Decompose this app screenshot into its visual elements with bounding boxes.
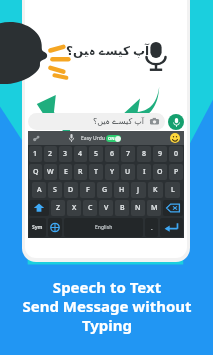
staticText: G [102,185,108,195]
button[interactable]: Enter [160,218,183,237]
staticText: V [104,203,109,213]
button[interactable]: Microphone [142,40,170,72]
staticText: K [153,185,158,195]
staticText: I [143,167,146,177]
staticText: 5 [94,149,99,159]
button[interactable]: J [131,182,146,198]
staticText: 1 [33,149,38,159]
staticText: C [88,203,93,213]
button[interactable]: Z [51,200,65,216]
button[interactable]: K [148,182,163,198]
staticText: آپ کیسے ہیں؟ [93,115,145,128]
staticText: 2 [48,149,53,159]
staticText: F [86,185,90,195]
staticText: 4 [78,149,83,159]
staticText: 0 [174,149,179,159]
button[interactable]: R [74,164,87,180]
button[interactable]: E [59,164,72,180]
staticText: ON [108,136,115,141]
staticText: H [119,185,125,195]
staticText: Q [33,167,39,177]
staticText: 6 [110,149,115,159]
button[interactable]: U [121,164,135,180]
button[interactable]: 3 [59,146,72,162]
staticText: L [171,185,175,195]
button[interactable]: W [44,164,57,180]
button[interactable]: B [115,200,129,216]
button[interactable]: . [145,218,158,237]
button[interactable]: G [97,182,112,198]
button[interactable]: H [114,182,129,198]
button[interactable]: ON [106,135,121,142]
button[interactable]: آپ کیسے ہیں؟ [28,113,165,130]
button[interactable]: Shift [29,200,49,216]
other: Voice input [69,134,74,142]
staticText: 3 [63,149,68,159]
button[interactable]: English [64,218,143,237]
staticText: English [95,224,113,231]
staticText: D [68,185,74,195]
button[interactable]: P [169,164,183,180]
staticText: M [151,203,158,213]
staticText: Speech to Text Send Message without Typi… [22,277,192,335]
staticText: 8 [142,149,147,159]
staticText: T [94,167,98,177]
staticText: S [53,185,57,195]
button[interactable]: F [80,182,95,198]
button[interactable]: 0 [169,146,183,162]
staticText: W [47,167,54,177]
button[interactable]: Settings [32,134,41,143]
other: Camera [150,117,159,126]
button[interactable]: X [67,200,81,216]
staticText: O [157,167,163,177]
button[interactable]: V [99,200,113,216]
staticText: B [120,203,125,213]
button[interactable]: O [153,164,167,180]
staticText: Sym [32,224,43,231]
button[interactable]: Change language [48,218,62,237]
staticText: آپ کیسے ہیں؟ [66,42,150,58]
staticText: 9 [158,149,163,159]
button[interactable]: Emoji [170,133,180,143]
button[interactable]: S [48,182,62,198]
button[interactable]: D [64,182,78,198]
staticText: 7 [126,149,131,159]
staticText: E [64,167,68,177]
staticText: R [78,167,83,177]
button[interactable]: 7 [121,146,135,162]
button[interactable]: Voice message [168,114,184,130]
staticText: Easy Urdu [81,135,105,142]
staticText: . [151,224,153,232]
button[interactable]: Backspace [163,200,183,216]
button[interactable]: A [32,182,46,198]
staticText: P [174,167,179,177]
button[interactable]: L [165,182,180,198]
button[interactable]: 4 [74,146,87,162]
staticText: X [72,203,77,213]
staticText: Y [110,167,115,177]
button[interactable]: 9 [153,146,167,162]
button[interactable]: Q [29,164,42,180]
button[interactable]: 1 [29,146,42,162]
button[interactable]: M [147,200,161,216]
staticText: Z [56,203,61,213]
button[interactable]: 2 [44,146,57,162]
button[interactable]: 6 [105,146,119,162]
staticText: U [125,167,131,177]
staticText: N [135,203,141,213]
button[interactable]: I [137,164,151,180]
button[interactable]: N [131,200,145,216]
button[interactable]: 8 [137,146,151,162]
button[interactable]: 5 [89,146,103,162]
button[interactable]: C [83,200,97,216]
button[interactable]: Y [105,164,119,180]
staticText: J [137,185,140,195]
button[interactable]: Sym [29,218,46,237]
button[interactable]: T [89,164,103,180]
staticText: A [37,185,42,195]
